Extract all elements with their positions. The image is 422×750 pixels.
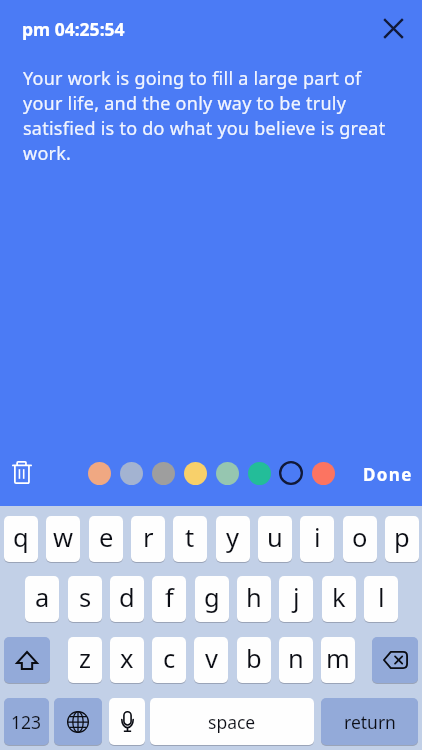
button[interactable]: Voice input [109, 698, 145, 745]
button[interactable]: r [131, 516, 165, 562]
button[interactable]: s [68, 576, 102, 622]
button[interactable]: m [321, 637, 355, 683]
button[interactable]: i [300, 516, 334, 562]
button[interactable]: q [4, 516, 38, 562]
button[interactable]: Done [351, 454, 422, 495]
staticText: e [99, 520, 114, 555]
staticText: space [208, 710, 256, 734]
button[interactable]: l [364, 576, 398, 622]
button[interactable]: Colour 2 [117, 459, 145, 487]
button[interactable]: c [152, 637, 186, 683]
staticText: m [326, 641, 350, 676]
button[interactable]: z [68, 637, 102, 683]
button[interactable]: Colour 4 [181, 459, 209, 487]
button[interactable]: a [25, 576, 59, 622]
button[interactable]: Backspace [372, 637, 418, 683]
staticText: u [267, 520, 283, 555]
staticText: g [204, 580, 220, 615]
button[interactable]: v [194, 637, 228, 683]
button[interactable]: t [173, 516, 207, 562]
button[interactable]: Colour 7 [277, 459, 305, 487]
button[interactable]: Delete [3, 454, 40, 491]
staticText: r [143, 520, 154, 555]
staticText: o [352, 520, 368, 555]
staticText: j [293, 580, 300, 615]
button[interactable]: h [237, 576, 271, 622]
button[interactable]: k [322, 576, 356, 622]
button[interactable]: x [110, 637, 144, 683]
button[interactable]: Close [375, 10, 412, 47]
button[interactable]: w [46, 516, 80, 562]
staticText: 123 [11, 710, 42, 734]
staticText: pm 04:25:54 [22, 17, 125, 41]
button[interactable]: u [258, 516, 292, 562]
staticText: y [226, 520, 240, 555]
button[interactable]: y [216, 516, 250, 562]
staticText: x [120, 641, 134, 676]
staticText: k [332, 580, 346, 615]
staticText: a [35, 580, 50, 615]
staticText: w [53, 520, 74, 555]
button[interactable]: d [110, 576, 144, 622]
button[interactable]: Colour 6 [245, 459, 273, 487]
button[interactable]: f [152, 576, 186, 622]
button[interactable]: n [279, 637, 313, 683]
button[interactable]: Shift [4, 637, 50, 683]
button[interactable]: j [279, 576, 313, 622]
staticText: s [79, 580, 92, 615]
staticText: f [165, 580, 174, 615]
staticText: return [344, 710, 396, 734]
button[interactable]: space [150, 698, 314, 745]
button[interactable]: Switch language [54, 698, 102, 745]
staticText: l [378, 580, 385, 615]
button[interactable]: Colour 8 [309, 459, 337, 487]
button[interactable]: Colour 1 [85, 459, 113, 487]
staticText: v [205, 641, 218, 676]
staticText: d [119, 580, 135, 615]
button[interactable]: g [195, 576, 229, 622]
staticText: i [314, 520, 321, 555]
staticText: n [288, 641, 304, 676]
button[interactable]: o [343, 516, 377, 562]
staticText: h [246, 580, 262, 615]
staticText: Your work is going to fill a large part … [23, 66, 401, 166]
button[interactable]: Colour 5 [213, 459, 241, 487]
staticText: b [246, 641, 262, 676]
button[interactable]: return [321, 698, 418, 745]
button[interactable]: p [385, 516, 419, 562]
staticText: t [185, 520, 195, 555]
button[interactable]: Colour 3 [149, 459, 177, 487]
staticText: c [163, 641, 176, 676]
staticText: q [13, 520, 29, 555]
button[interactable]: 123 [4, 698, 49, 745]
button[interactable]: b [237, 637, 271, 683]
button[interactable]: e [89, 516, 123, 562]
staticText: p [394, 520, 410, 555]
staticText: z [79, 641, 91, 676]
